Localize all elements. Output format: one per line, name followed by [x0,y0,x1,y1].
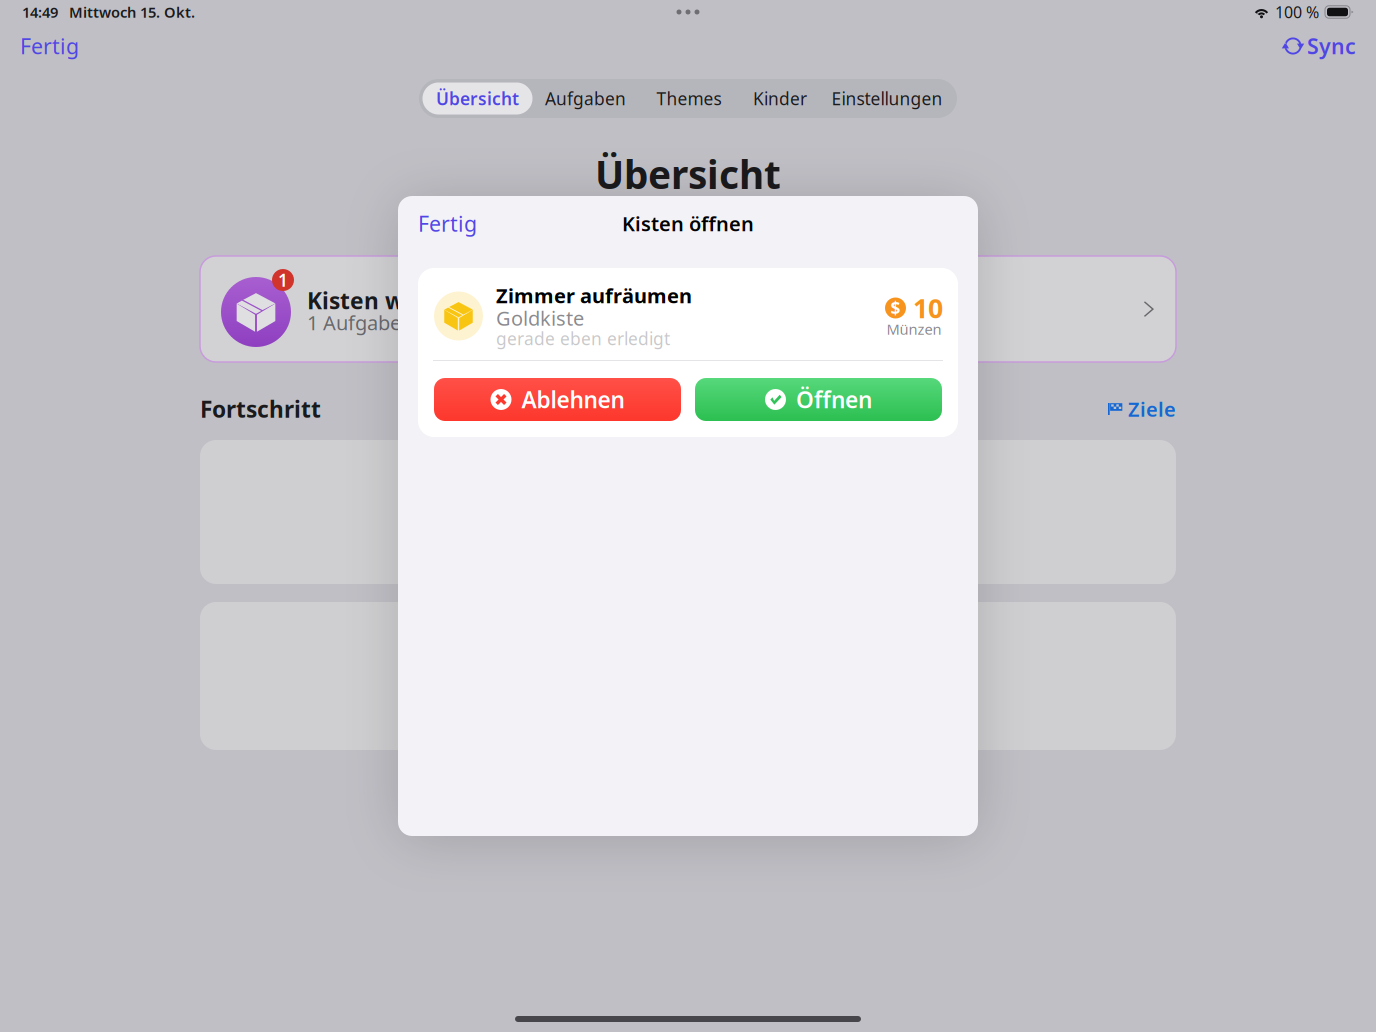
staticText: Kisten warten! [307,285,473,315]
staticText: Übersicht [595,148,781,200]
button[interactable]: Kinder [739,82,820,114]
staticText: Einstellungen [831,87,942,110]
staticText: Mittwoch 15. Okt. [69,2,195,22]
staticText: Themes [656,87,721,110]
button[interactable]: Sync [1281,33,1356,59]
button[interactable]: Themes [638,82,739,114]
staticText: Münzen [886,319,941,339]
button[interactable]: 1 [200,256,1176,362]
staticText: 1 Aufgabe bereit [307,309,460,336]
staticText: 100 % [1275,1,1319,23]
staticText: Fertig [418,209,477,238]
staticText: $ [890,296,900,319]
staticText: Goldkiste [496,305,584,331]
button[interactable]: Fertig [418,211,477,235]
button[interactable]: Aufgaben [532,82,638,114]
staticText: gerade eben erledigt [496,327,670,350]
staticText: Aufgaben [545,87,626,110]
staticText: Ablehnen [521,384,624,414]
staticText: Kinder [753,87,807,110]
staticText: Fortschritt [200,394,321,424]
staticText: 1 [278,268,288,291]
button[interactable]: Ziele [1108,396,1176,422]
staticText: 14:49 [22,2,58,22]
staticText: Sync [1307,32,1356,60]
staticText: Kisten öffnen [622,210,754,237]
button[interactable]: Ablehnen [434,378,681,421]
button[interactable]: Einstellungen [820,82,953,114]
button[interactable]: Fertig [20,33,79,59]
staticText: Ziele [1128,396,1176,422]
button[interactable]: Übersicht [422,82,532,114]
staticText: 10 [913,290,943,326]
staticText: Fertig [20,32,79,60]
staticText: Zimmer aufräumen [496,282,692,309]
staticText: Öffnen [796,384,872,414]
staticText: Übersicht [436,87,519,110]
button[interactable]: Öffnen [695,378,942,421]
